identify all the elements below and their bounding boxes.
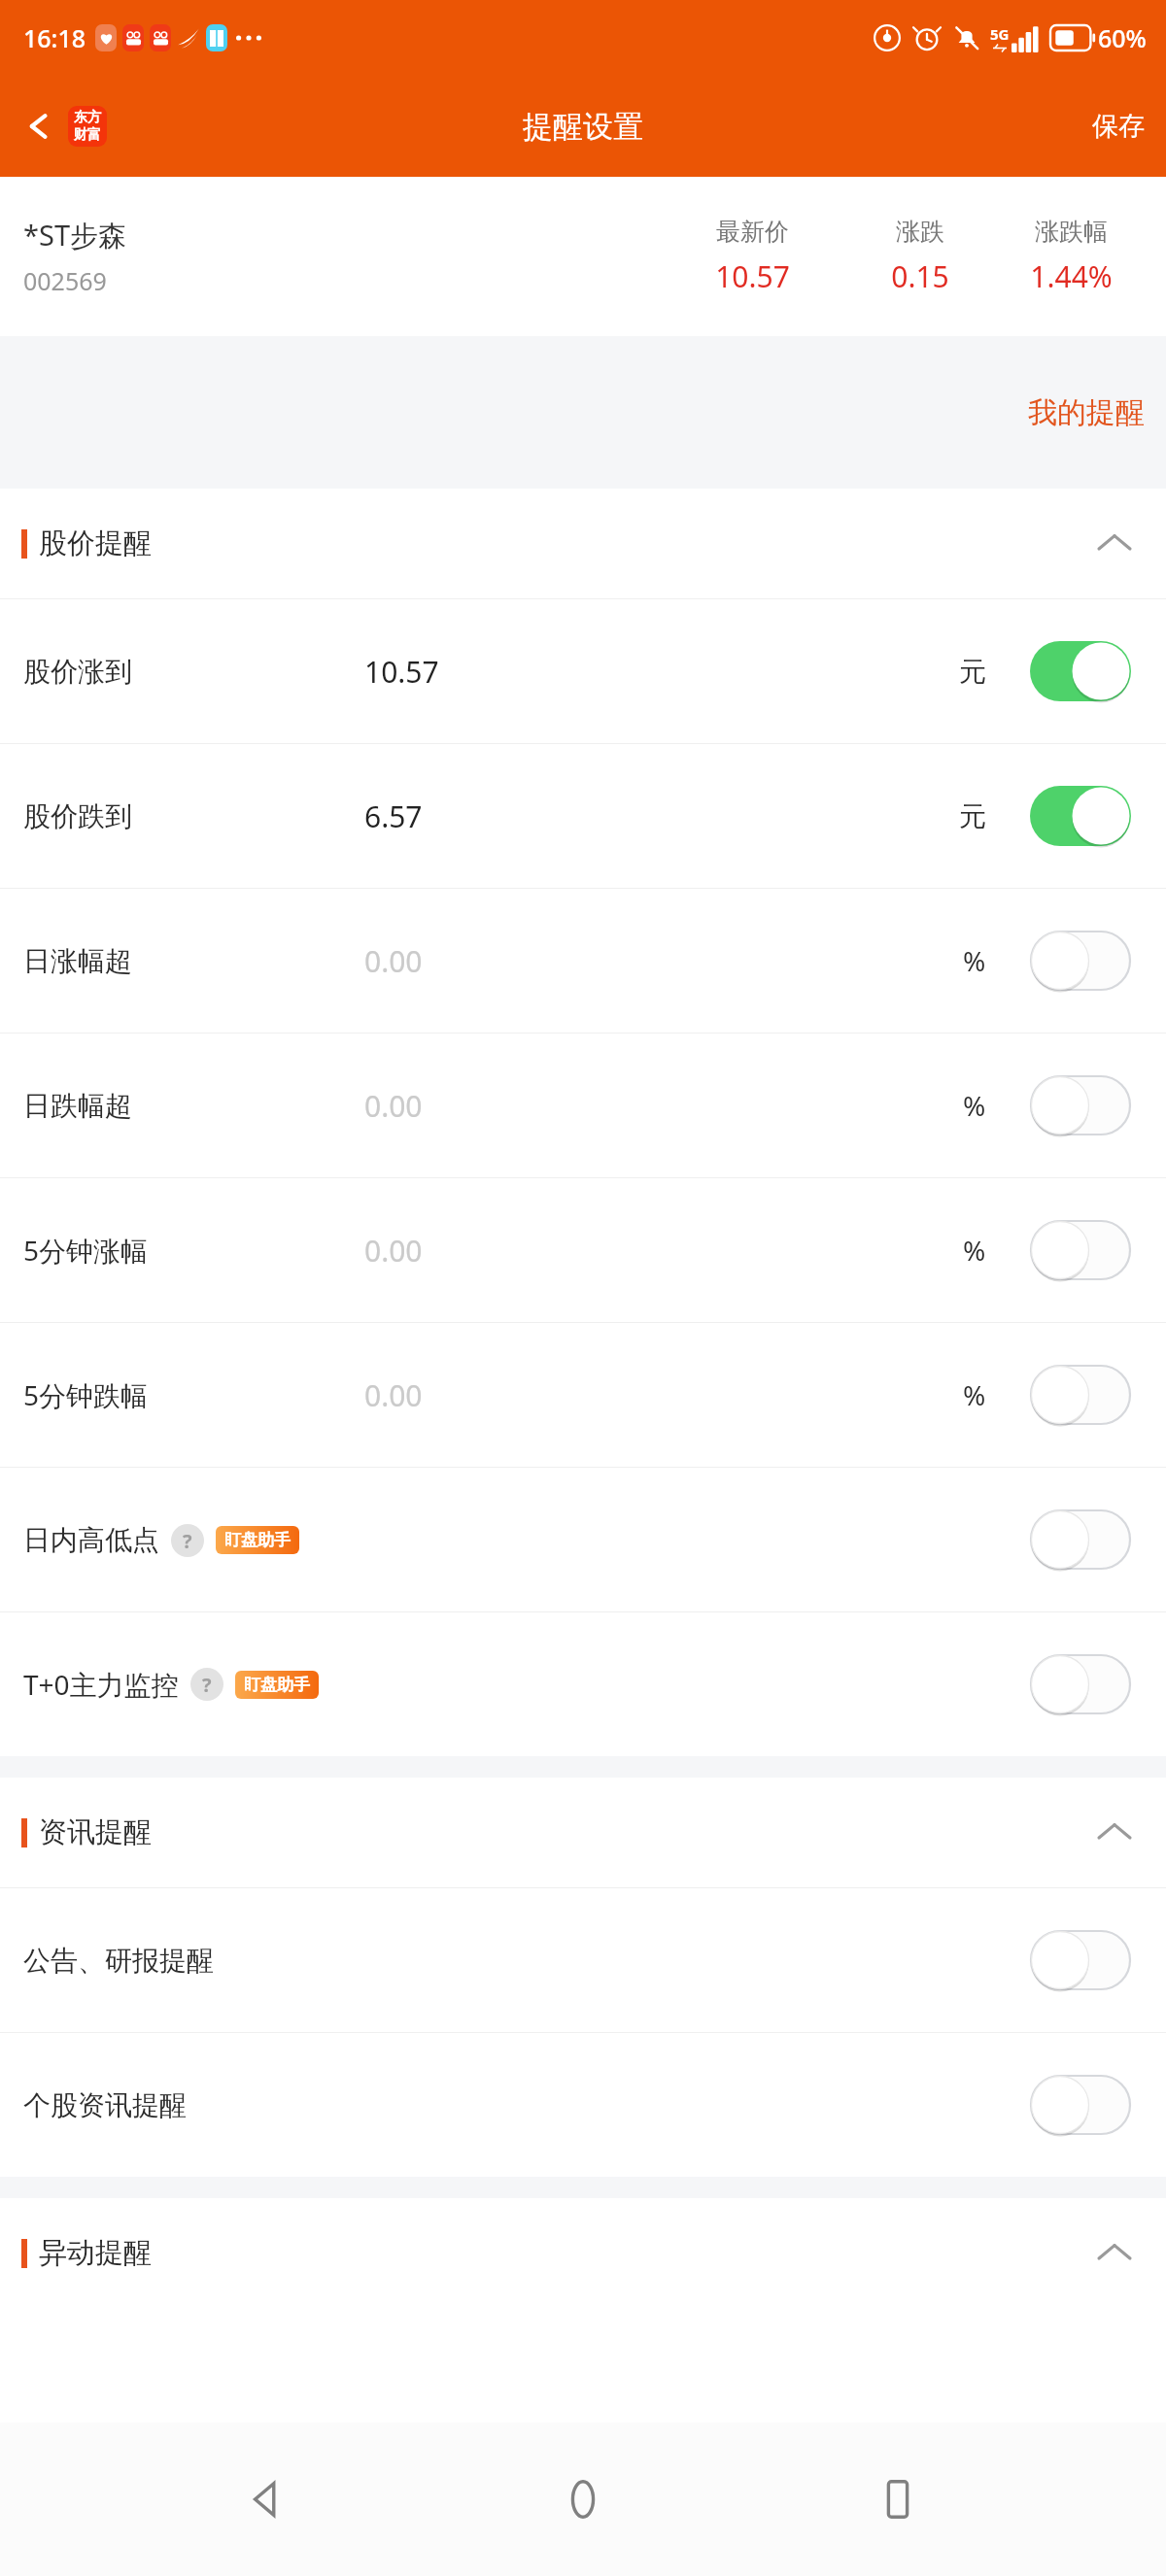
staticText: 公告、研报提醒 [23, 1944, 214, 1978]
staticText: 个股资讯提醒 [23, 2088, 187, 2122]
button[interactable]: 说明 [171, 1524, 204, 1557]
staticText: 日跌幅超 [23, 1089, 132, 1123]
staticText: 002569 [23, 264, 107, 297]
staticText: 资讯提醒 [39, 1814, 152, 1850]
button[interactable]: 开关 已关闭 [1030, 1654, 1131, 1714]
staticText: 1.44% [1030, 256, 1113, 296]
staticText: *ST步森 [23, 216, 127, 254]
button[interactable]: 5分钟跌幅 [0, 1323, 1166, 1467]
button[interactable]: 最近任务 [851, 2453, 944, 2546]
button[interactable]: 5分钟涨幅 [0, 1178, 1166, 1322]
staticText: % [963, 1232, 986, 1269]
button[interactable]: 开关 已关闭 [1030, 1509, 1131, 1570]
button[interactable]: 日涨幅超 [0, 889, 1166, 1033]
button[interactable]: 资讯提醒 [0, 1778, 1166, 1887]
staticText: 东方 [74, 109, 101, 126]
staticText: 保存 [1092, 110, 1145, 143]
button[interactable]: 开关 已关闭 [1030, 1930, 1131, 1990]
button[interactable]: 股价涨到 [0, 599, 1166, 743]
staticText: 0.00 [364, 1086, 423, 1126]
staticText: 10.57 [364, 652, 439, 692]
staticText: 0.00 [364, 941, 423, 981]
staticText: 日内高低点 [23, 1523, 159, 1557]
button[interactable]: 公告、研报提醒 [0, 1888, 1166, 2032]
button[interactable]: 开关 已关闭 [1030, 2075, 1131, 2135]
staticText: 盯盘助手 [224, 1530, 291, 1550]
staticText: 股价跌到 [23, 799, 132, 833]
staticText: 我的提醒 [1028, 394, 1145, 431]
button[interactable]: T+0主力监控 [0, 1612, 1166, 1756]
button[interactable]: 异动提醒 [0, 2198, 1166, 2308]
button[interactable]: 股价跌到 [0, 744, 1166, 888]
button[interactable]: 开关 已开启 [1030, 786, 1131, 846]
staticText: 日涨幅超 [23, 944, 132, 978]
staticText: 财富 [74, 126, 101, 144]
staticText: % [963, 1087, 986, 1124]
staticText: 盯盘助手 [244, 1675, 310, 1695]
staticText: 提醒设置 [523, 108, 643, 146]
button[interactable]: 返回 东方财富 [14, 100, 115, 153]
staticText: 0.15 [891, 256, 949, 296]
staticText: 股价涨到 [23, 655, 132, 689]
staticText: 5分钟跌幅 [23, 1376, 149, 1413]
staticText: 元 [959, 655, 986, 689]
button[interactable]: 日内高低点 [0, 1468, 1166, 1611]
staticText: 最新价 [716, 217, 789, 247]
button[interactable]: 保存 [1071, 96, 1166, 156]
staticText: 5G [990, 24, 1010, 44]
staticText: % [963, 942, 986, 979]
staticText: 5分钟涨幅 [23, 1232, 149, 1269]
staticText: 异动提醒 [39, 2235, 152, 2271]
staticText: 涨跌 [896, 217, 944, 247]
button[interactable]: 开关 已关闭 [1030, 1220, 1131, 1280]
staticText: 60% [1098, 21, 1147, 54]
button[interactable]: 开关 已开启 [1030, 641, 1131, 701]
button[interactable]: 我的提醒 [1007, 379, 1166, 447]
staticText: T+0主力监控 [23, 1666, 179, 1703]
button[interactable]: 开关 已关闭 [1030, 1075, 1131, 1135]
staticText: 股价提醒 [39, 525, 152, 561]
staticText: % [963, 1376, 986, 1413]
button[interactable]: 主页 [536, 2453, 630, 2546]
staticText: 10.57 [715, 256, 790, 296]
button[interactable]: 返回 [222, 2453, 315, 2546]
button[interactable]: 个股资讯提醒 [0, 2033, 1166, 2177]
button[interactable]: 开关 已关闭 [1030, 931, 1131, 991]
staticText: 元 [959, 799, 986, 833]
staticText: ? [202, 1672, 212, 1698]
staticText: 0.00 [364, 1231, 423, 1271]
button[interactable]: 开关 已关闭 [1030, 1365, 1131, 1425]
staticText: 0.00 [364, 1375, 423, 1415]
staticText: 16:18 [23, 21, 86, 54]
staticText: ? [183, 1528, 192, 1554]
staticText: 涨跌幅 [1035, 217, 1108, 247]
button[interactable]: 股价提醒 [0, 489, 1166, 598]
staticText: 6.57 [364, 797, 423, 836]
button[interactable]: 日跌幅超 [0, 1034, 1166, 1177]
button[interactable]: 说明 [190, 1668, 223, 1701]
